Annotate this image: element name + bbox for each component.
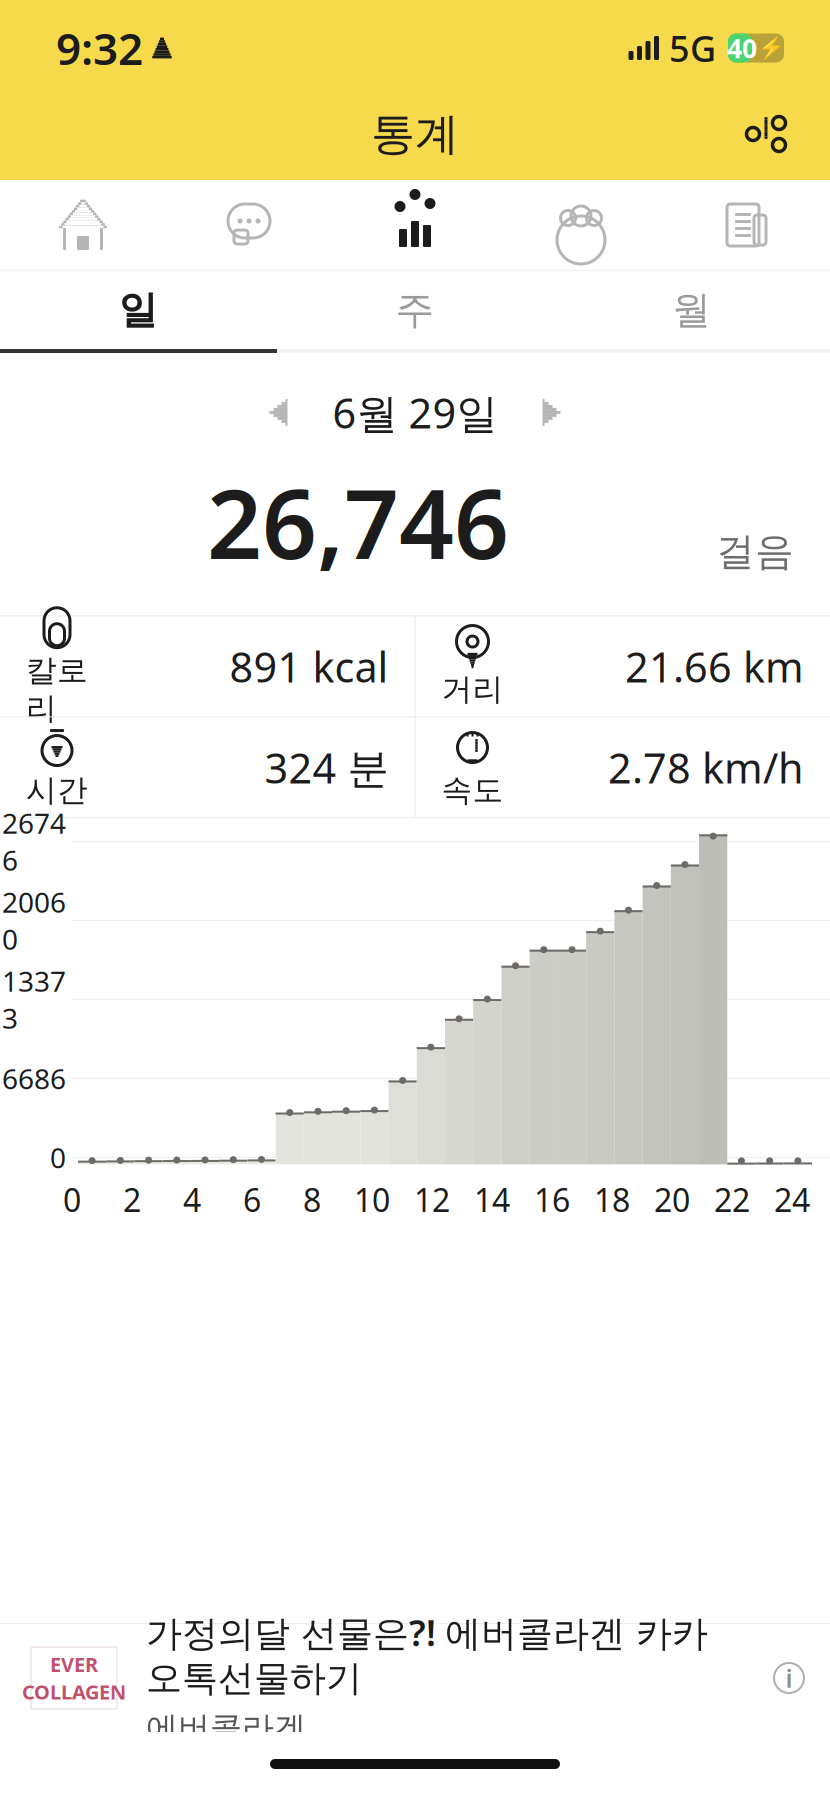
staticText: 891 kcal (229, 639, 388, 694)
button[interactable]: 속도 (415, 717, 830, 817)
staticText: 6 (243, 1178, 261, 1221)
button[interactable]: 친구 (498, 180, 664, 270)
staticText: 324 분 (264, 740, 388, 795)
staticText: 월 (672, 286, 711, 334)
staticText: 12 (414, 1178, 450, 1221)
staticText: 24 (774, 1178, 810, 1221)
staticText: 거리 (441, 670, 503, 708)
button[interactable]: 이전 날짜 (258, 392, 298, 432)
staticText: 6686 (2, 1060, 66, 1097)
staticText: 가정의달 선물은?! 에버콜라겐 카카오톡선물하기 (146, 1608, 708, 1700)
staticText: 40 (727, 30, 757, 66)
staticText: i (785, 1661, 792, 1695)
button[interactable]: 광고: 가정의달 선물은?! 에버콜라겐 카카오톡선물하기 (0, 1624, 830, 1732)
button[interactable]: 홈 (0, 180, 166, 270)
staticText: 0 (63, 1178, 81, 1221)
staticText: 속도 (441, 771, 503, 809)
staticText: 26,746 (207, 458, 509, 585)
staticText: 20060 (2, 883, 66, 958)
staticText: 통계 (371, 107, 459, 161)
staticText: 일 (119, 286, 158, 334)
staticText: 에버콜라겐 (146, 1708, 306, 1748)
staticText: 16 (534, 1178, 570, 1221)
staticText: 14 (474, 1178, 510, 1221)
staticText: 시간 (26, 771, 88, 809)
staticText: 5G (669, 24, 716, 72)
staticText: 9:32 (56, 19, 143, 77)
button[interactable]: 소식 (664, 180, 830, 270)
staticText: 4 (183, 1178, 201, 1221)
button[interactable]: 주 (277, 271, 553, 349)
staticText: 2 (123, 1178, 141, 1221)
staticText: EVER (50, 1651, 98, 1677)
staticText: COLLAGEN (22, 1678, 126, 1705)
staticText: 주 (395, 286, 434, 334)
staticText: 0 (50, 1139, 66, 1176)
staticText: 20 (654, 1178, 690, 1221)
staticText: 8 (303, 1178, 321, 1221)
button[interactable]: 칼로리 (0, 616, 414, 716)
button[interactable]: 통계 (332, 180, 498, 270)
button[interactable]: 다음 날짜 (531, 392, 571, 432)
staticText: 걸음 (716, 528, 794, 575)
staticText: 22 (714, 1178, 750, 1221)
button[interactable]: 공유 (730, 98, 802, 170)
button[interactable]: 월 (553, 271, 830, 349)
button[interactable]: 시간 (0, 717, 414, 817)
button[interactable]: 채팅 (166, 180, 332, 270)
staticText: 26746 (2, 804, 66, 879)
staticText: 칼로리 (26, 652, 88, 727)
staticText: 10 (354, 1178, 390, 1221)
staticText: 18 (594, 1178, 630, 1221)
staticText: 21.66 km (625, 639, 804, 694)
staticText: 6월 29일 (332, 385, 497, 440)
staticText: ⚡ (758, 36, 785, 60)
staticText: 2.78 km/h (608, 740, 804, 795)
button[interactable]: 일 (0, 271, 277, 349)
button[interactable]: 거리 (415, 616, 830, 716)
staticText: 13373 (2, 962, 66, 1037)
